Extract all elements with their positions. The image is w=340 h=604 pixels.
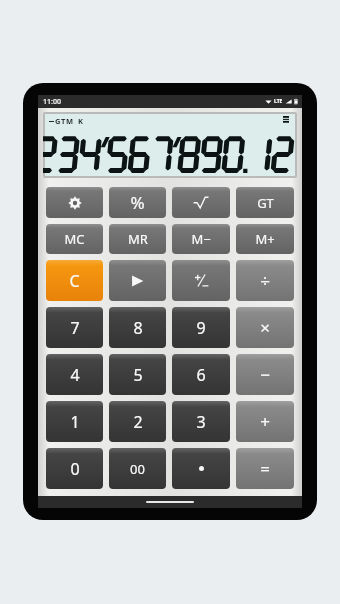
staticText: 11:00 <box>43 97 61 107</box>
staticText: 3 <box>196 411 206 433</box>
button[interactable]: 0 <box>46 448 103 489</box>
button[interactable]: ÷ <box>236 260 294 301</box>
button[interactable]: 2 <box>109 401 166 442</box>
button[interactable]: 6 <box>172 354 230 395</box>
button[interactable]: Plus minus <box>172 260 230 301</box>
staticText: 6 <box>196 364 206 386</box>
button[interactable]: Square root <box>172 187 230 218</box>
button[interactable]: 8 <box>109 307 166 348</box>
staticText: 7 <box>70 317 80 339</box>
button[interactable]: M+ <box>236 224 294 254</box>
staticText: MR <box>128 230 148 248</box>
staticText: ÷ <box>260 269 270 292</box>
button[interactable]: 00 <box>109 448 166 489</box>
staticText: 1 <box>70 411 80 433</box>
button[interactable]: × <box>236 307 294 348</box>
staticText: % <box>130 191 145 214</box>
button[interactable]: Settings <box>46 187 103 218</box>
staticText: = <box>260 457 270 480</box>
button[interactable]: 7 <box>46 307 103 348</box>
button[interactable]: + <box>236 401 294 442</box>
button[interactable]: Decimal point <box>172 448 230 489</box>
button[interactable]: − <box>236 354 294 395</box>
staticText: M− <box>191 230 211 248</box>
button[interactable]: MR <box>109 224 166 254</box>
staticText: 4 <box>70 364 80 386</box>
button[interactable]: GT <box>236 187 294 218</box>
staticText: × <box>260 316 270 339</box>
staticText: LTE <box>274 98 283 105</box>
staticText: GT <box>257 194 274 212</box>
staticText: MC <box>64 230 85 248</box>
button[interactable]: 3 <box>172 401 230 442</box>
button[interactable]: 5 <box>109 354 166 395</box>
staticText: − <box>260 363 270 386</box>
staticText: M+ <box>255 230 275 248</box>
staticText: 5 <box>133 364 143 386</box>
staticText: 00 <box>130 460 145 478</box>
staticText: 2 <box>133 411 143 433</box>
button[interactable]: = <box>236 448 294 489</box>
staticText: 0 <box>70 458 80 480</box>
button[interactable]: 9 <box>172 307 230 348</box>
staticText: C <box>69 270 80 292</box>
button[interactable]: 1 <box>46 401 103 442</box>
button[interactable]: C <box>46 260 103 301</box>
staticText: + <box>260 410 270 433</box>
staticText: 8 <box>133 317 143 339</box>
staticText: GTM <box>55 116 74 126</box>
button[interactable]: M− <box>172 224 230 254</box>
staticText: K <box>78 116 83 126</box>
button[interactable]: % <box>109 187 166 218</box>
button[interactable]: Backspace <box>109 260 166 301</box>
staticText: 9 <box>196 317 206 339</box>
button[interactable]: MC <box>46 224 103 254</box>
button[interactable]: 4 <box>46 354 103 395</box>
